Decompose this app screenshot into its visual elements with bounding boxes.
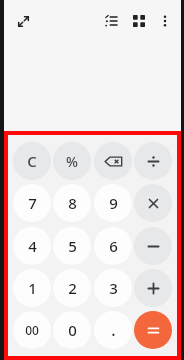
staticText: 2 — [68, 278, 77, 298]
button[interactable]: 6 — [94, 227, 132, 265]
staticText: C — [27, 151, 37, 171]
staticText: 3 — [109, 278, 118, 298]
button[interactable]: Add — [134, 269, 172, 307]
staticText: % — [66, 152, 78, 171]
button[interactable]: % — [53, 142, 91, 180]
button[interactable]: 5 — [53, 227, 91, 265]
button[interactable]: History — [101, 11, 121, 31]
staticText: 9 — [109, 193, 118, 213]
button[interactable]: 4 — [13, 227, 51, 265]
staticText: 4 — [28, 236, 37, 256]
button[interactable]: . — [94, 311, 132, 349]
button[interactable]: 8 — [53, 184, 91, 222]
button[interactable]: 2 — [53, 269, 91, 307]
button[interactable]: 0 — [53, 311, 91, 349]
button[interactable]: 1 — [13, 269, 51, 307]
button[interactable]: 3 — [94, 269, 132, 307]
staticText: 1 — [28, 278, 37, 298]
button[interactable]: Keypad layout — [129, 11, 149, 31]
button[interactable]: Subtract — [134, 227, 172, 265]
staticText: 00 — [25, 322, 39, 338]
button[interactable]: Divide — [134, 142, 172, 180]
staticText: . — [111, 319, 116, 341]
button[interactable]: Collapse — [13, 11, 33, 31]
staticText: 5 — [68, 236, 77, 256]
staticText: 8 — [68, 193, 77, 213]
button[interactable]: More options — [156, 12, 174, 30]
button[interactable]: 00 — [13, 311, 51, 349]
button[interactable]: Equals — [134, 311, 172, 349]
staticText: 0 — [68, 320, 77, 340]
staticText: 6 — [109, 236, 118, 256]
button[interactable]: Multiply — [134, 184, 172, 222]
button[interactable]: C — [13, 142, 51, 180]
button[interactable]: 7 — [13, 184, 51, 222]
staticText: 7 — [28, 193, 37, 213]
button[interactable]: Backspace — [94, 142, 132, 180]
button[interactable]: 9 — [94, 184, 132, 222]
